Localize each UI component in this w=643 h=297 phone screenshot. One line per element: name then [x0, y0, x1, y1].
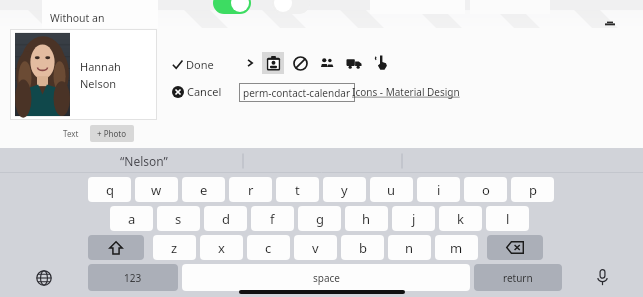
button[interactable]: Toggle off — [272, 0, 310, 14]
button[interactable]: Touch app — [372, 53, 390, 71]
staticText: m — [450, 239, 463, 257]
button[interactable]: w — [135, 177, 178, 202]
staticText: g — [316, 210, 324, 228]
staticText: d — [222, 210, 230, 228]
button[interactable]: d — [204, 206, 247, 231]
button[interactable]: space — [182, 264, 470, 291]
button[interactable]: People — [318, 54, 336, 72]
staticText: Icons - Material Design — [352, 85, 460, 99]
button[interactable]: z — [153, 235, 196, 260]
staticText: b — [359, 239, 367, 257]
button[interactable]: Cancel — [172, 84, 222, 99]
button[interactable]: return — [474, 264, 562, 291]
button[interactable]: perm-contact-calendar — [239, 83, 355, 102]
button[interactable]: h — [345, 206, 388, 231]
staticText: x — [218, 239, 225, 257]
staticText: v — [312, 239, 319, 257]
staticText: p — [529, 181, 537, 199]
button[interactable]: Text — [58, 126, 84, 141]
staticText: k — [457, 210, 464, 228]
button[interactable]: n — [388, 235, 431, 260]
button[interactable]: Icons - Material Design — [352, 85, 460, 99]
button[interactable]: o — [464, 177, 507, 202]
button[interactable]: Hannah — [10, 29, 157, 120]
button[interactable]: j — [392, 206, 435, 231]
staticText: Cancel — [187, 84, 222, 99]
staticText: w — [151, 181, 162, 199]
staticText: space — [313, 271, 340, 285]
button[interactable]: x — [200, 235, 243, 260]
button[interactable]: a — [110, 206, 153, 231]
button[interactable]: b — [341, 235, 384, 260]
staticText: Done — [186, 57, 214, 72]
button[interactable]: i — [417, 177, 460, 202]
button[interactable]: Shipping — [345, 54, 363, 72]
button[interactable]: + Photo — [90, 125, 134, 142]
button[interactable]: perm contact calendar — [262, 52, 284, 74]
button[interactable]: Block — [291, 54, 309, 72]
staticText: y — [341, 181, 348, 199]
button[interactable]: t — [276, 177, 319, 202]
staticText: c — [265, 239, 272, 257]
button[interactable]: r — [229, 177, 272, 202]
button[interactable]: c — [247, 235, 290, 260]
staticText: Text — [63, 128, 79, 139]
button[interactable]: q — [88, 177, 131, 202]
staticText: Nelson — [80, 76, 117, 91]
button[interactable]: Shift — [88, 235, 144, 260]
button[interactable]: Change keyboard — [0, 264, 88, 291]
staticText: r — [248, 181, 254, 199]
staticText: z — [171, 239, 178, 257]
staticText: a — [128, 210, 136, 228]
button[interactable]: u — [370, 177, 413, 202]
button[interactable]: Without an — [42, 0, 158, 28]
staticText: t — [295, 181, 300, 199]
staticText: 123 — [124, 271, 142, 285]
button[interactable]: g — [298, 206, 341, 231]
staticText: u — [387, 181, 396, 199]
staticText: e — [200, 181, 208, 199]
staticText: s — [175, 210, 182, 228]
button[interactable]: Dictation — [562, 264, 643, 291]
button[interactable]: s — [157, 206, 200, 231]
staticText: j — [412, 210, 416, 228]
button[interactable]: 123 — [88, 264, 178, 291]
staticText: l — [506, 210, 510, 228]
staticText: Without an — [50, 11, 105, 25]
button[interactable]: Toggle on — [213, 0, 251, 14]
staticText: h — [362, 210, 371, 228]
button[interactable]: m — [435, 235, 478, 260]
button[interactable]: l — [486, 206, 529, 231]
staticText: + Photo — [97, 128, 127, 139]
button[interactable]: v — [294, 235, 337, 260]
staticText: n — [405, 239, 414, 257]
button[interactable]: Next — [243, 56, 257, 70]
button[interactable]: “Nelson” — [120, 153, 168, 169]
staticText: i — [437, 181, 441, 199]
button[interactable]: p — [511, 177, 554, 202]
button[interactable]: k — [439, 206, 482, 231]
staticText: f — [270, 210, 275, 228]
button[interactable]: Backspace — [487, 235, 543, 260]
button[interactable]: Done — [172, 57, 214, 72]
staticText: perm-contact-calendar — [243, 86, 351, 100]
staticText: o — [482, 181, 490, 199]
staticText: return — [503, 271, 533, 285]
button[interactable]: f — [251, 206, 294, 231]
button[interactable]: e — [182, 177, 225, 202]
staticText: q — [106, 181, 114, 199]
staticText: Hannah — [80, 59, 121, 74]
button[interactable]: y — [323, 177, 366, 202]
